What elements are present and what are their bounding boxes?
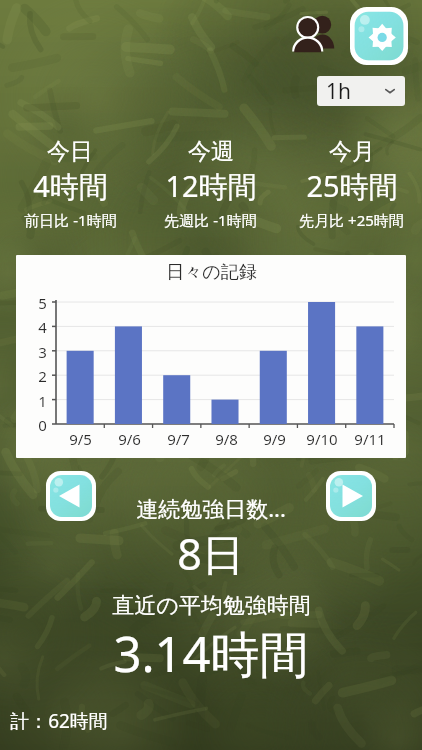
button[interactable]: 今月 xyxy=(281,137,422,230)
staticText: 9/11 xyxy=(354,429,386,449)
staticText: 9/6 xyxy=(118,429,141,449)
button[interactable]: 1h xyxy=(317,76,405,106)
staticText: 直近の平均勉強時間 xyxy=(112,592,311,620)
staticText: 日々の記録 xyxy=(166,261,257,284)
staticText: 8日 xyxy=(177,524,245,583)
staticText: 1 xyxy=(38,391,47,411)
staticText: 前日比 -1時間 xyxy=(24,210,117,230)
staticText: 連続勉強日数... xyxy=(136,493,286,523)
staticText: 先月比 +25時間 xyxy=(299,210,404,230)
button[interactable]: Friends xyxy=(289,11,341,58)
staticText: 9/8 xyxy=(215,429,238,449)
staticText: 計：62時間 xyxy=(10,708,108,734)
button[interactable]: Previous xyxy=(46,471,96,521)
staticText: 9/5 xyxy=(69,429,92,449)
button[interactable]: Next xyxy=(326,471,376,521)
staticText: 9/10 xyxy=(306,429,338,449)
staticText: 25時間 xyxy=(306,166,398,206)
button[interactable]: 計：62時間 xyxy=(10,708,108,734)
staticText: 2 xyxy=(38,366,47,386)
staticText: 4時間 xyxy=(33,166,108,206)
staticText: 3 xyxy=(38,342,47,362)
staticText: 今日 xyxy=(47,137,93,166)
staticText: 先週比 -1時間 xyxy=(164,210,257,230)
button[interactable]: 今週 xyxy=(140,137,281,230)
staticText: 3.14時間 xyxy=(113,620,309,687)
staticText: 今月 xyxy=(329,137,375,166)
staticText: 9/9 xyxy=(263,429,286,449)
button[interactable]: 日々の記録 xyxy=(16,255,406,458)
staticText: 0 xyxy=(38,415,47,435)
staticText: 5 xyxy=(38,293,47,313)
staticText: 12時間 xyxy=(165,166,257,206)
staticText: 1h xyxy=(326,77,351,106)
button[interactable]: Settings xyxy=(350,7,408,65)
button[interactable]: 今日 xyxy=(0,137,140,230)
staticText: 4 xyxy=(38,317,47,337)
staticText: 今週 xyxy=(188,137,234,166)
staticText: 9/7 xyxy=(167,429,190,449)
